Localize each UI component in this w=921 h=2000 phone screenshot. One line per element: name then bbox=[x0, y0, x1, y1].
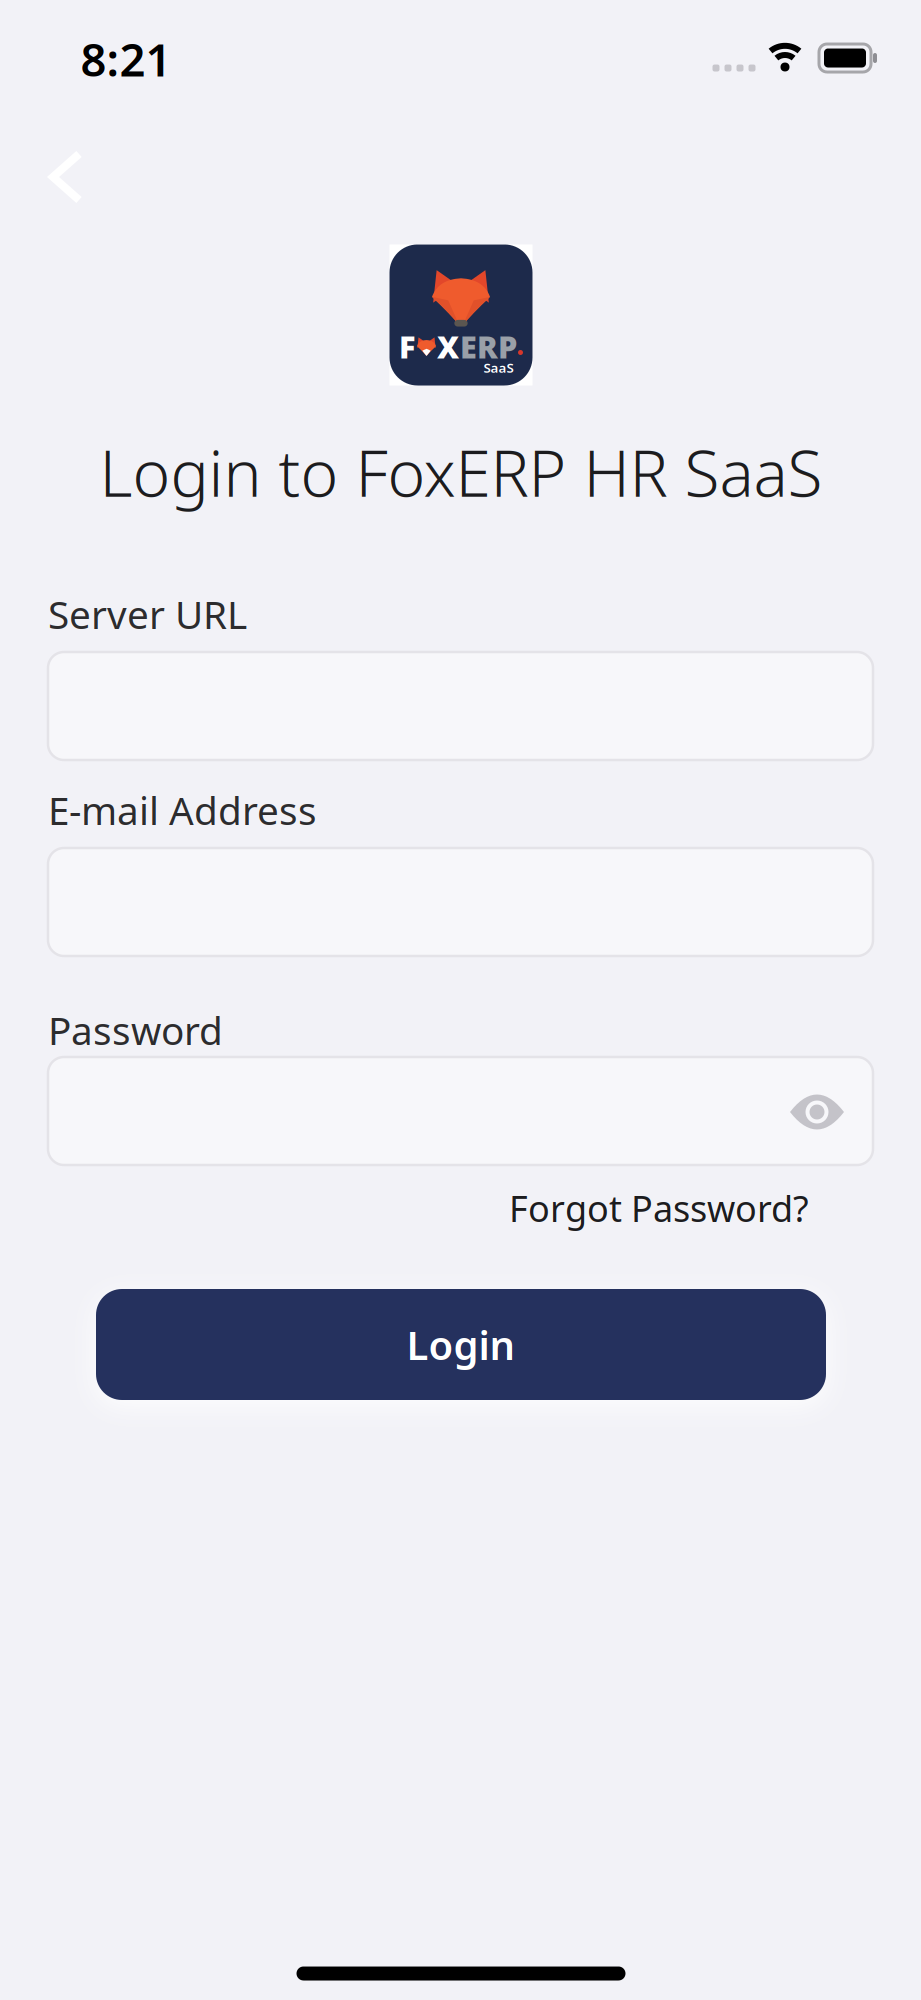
staticText: SaaS bbox=[483, 359, 513, 376]
staticText: X bbox=[437, 326, 459, 367]
staticText: E-mail Address bbox=[48, 784, 317, 836]
staticText: 8:21 bbox=[80, 29, 171, 89]
staticText: F bbox=[399, 326, 416, 367]
staticText: Password bbox=[48, 1004, 223, 1056]
staticText: Login bbox=[406, 1318, 515, 1371]
button[interactable] bbox=[39, 140, 93, 214]
button[interactable]: Login bbox=[96, 1289, 826, 1400]
staticText: Forgot Password? bbox=[509, 1184, 809, 1232]
button[interactable] bbox=[782, 1077, 852, 1147]
staticText: Login to FoxERP HR SaaS bbox=[99, 429, 822, 514]
button[interactable]: Forgot Password? bbox=[509, 1184, 809, 1232]
button[interactable] bbox=[48, 1057, 873, 1165]
staticText: Server URL bbox=[48, 588, 247, 640]
staticText: ERP bbox=[460, 326, 517, 367]
